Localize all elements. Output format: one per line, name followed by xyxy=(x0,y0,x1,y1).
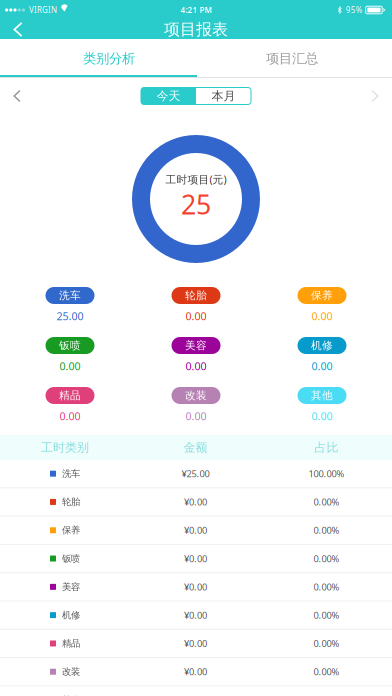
staticText: 0.00 xyxy=(185,409,206,423)
staticText: 精品 xyxy=(59,389,81,402)
staticText: 本月 xyxy=(211,89,235,103)
staticText: 工时类别 xyxy=(41,440,89,455)
staticText: ¥0.00 xyxy=(184,581,207,593)
staticText: 轮胎 xyxy=(62,496,80,508)
staticText: 其他 xyxy=(62,694,80,696)
button[interactable]: Next period xyxy=(358,85,392,107)
button[interactable]: Back xyxy=(0,20,36,39)
staticText: ¥25.00 xyxy=(181,467,209,480)
staticText: 0.00 xyxy=(185,359,206,373)
staticText: 改装 xyxy=(185,389,207,402)
staticText: 100.00% xyxy=(308,467,344,480)
staticText: 95% xyxy=(346,5,363,15)
button[interactable]: Previous period xyxy=(0,85,34,107)
staticText: 金额 xyxy=(183,440,207,455)
staticText: ¥0.00 xyxy=(184,666,207,678)
staticText: 4:21 PM xyxy=(180,5,211,15)
staticText: 工时项目(元) xyxy=(165,172,226,186)
staticText: 美容 xyxy=(62,581,80,593)
staticText: 0.00 xyxy=(185,309,206,323)
button[interactable]: 机修 xyxy=(259,337,385,387)
staticText: 25 xyxy=(181,186,211,222)
button[interactable]: 类别分析 xyxy=(22,39,196,78)
staticText: 0.00 xyxy=(311,359,332,373)
staticText: 0.00% xyxy=(313,637,339,650)
staticText: 0.00% xyxy=(313,524,339,536)
staticText: ¥0.00 xyxy=(184,609,207,621)
staticText: ¥0.00 xyxy=(184,552,207,565)
staticText: 洗车 xyxy=(62,468,80,479)
staticText: 今天 xyxy=(156,89,180,103)
staticText: 25.00 xyxy=(56,309,83,323)
button[interactable]: 精品 xyxy=(7,387,133,437)
button[interactable]: 今天 xyxy=(141,87,196,104)
staticText: ¥0.00 xyxy=(184,637,207,650)
staticText: 改装 xyxy=(62,666,80,677)
staticText: 0.00 xyxy=(59,409,80,423)
staticText: 精品 xyxy=(62,638,80,649)
staticText: 0.00% xyxy=(313,581,339,593)
staticText: ¥0.00 xyxy=(184,496,207,508)
staticText: VIRGIN xyxy=(29,5,57,15)
staticText: ¥0.00 xyxy=(184,524,207,536)
button[interactable]: 轮胎 xyxy=(133,287,259,337)
staticText: 项目汇总 xyxy=(266,50,318,67)
button[interactable]: 保养 xyxy=(259,287,385,337)
button[interactable]: 洗车 xyxy=(7,287,133,337)
staticText: 0.00% xyxy=(313,496,339,508)
staticText: 钣喷 xyxy=(62,553,80,564)
staticText: 钣喷 xyxy=(59,339,81,352)
staticText: 0.00 xyxy=(311,309,332,323)
staticText: 保养 xyxy=(62,524,80,536)
staticText: 0.00% xyxy=(313,609,339,621)
staticText: 0.00% xyxy=(313,666,339,678)
staticText: 项目报表 xyxy=(164,20,228,39)
staticText: 占比 xyxy=(314,440,338,455)
staticText: 类别分析 xyxy=(83,50,135,67)
button[interactable]: 项目汇总 xyxy=(196,39,388,78)
button[interactable]: 钣喷 xyxy=(7,337,133,387)
staticText: 0.00 xyxy=(59,359,80,373)
button[interactable]: 本月 xyxy=(196,87,251,104)
staticText: 美容 xyxy=(185,339,207,352)
staticText: 0.00 xyxy=(311,409,332,423)
button[interactable]: 其他 xyxy=(259,387,385,437)
staticText: 洗车 xyxy=(59,289,81,302)
staticText: 其他 xyxy=(311,389,333,402)
button[interactable]: 改装 xyxy=(133,387,259,437)
staticText: 机修 xyxy=(62,609,80,621)
staticText: 轮胎 xyxy=(185,289,207,302)
button[interactable]: 美容 xyxy=(133,337,259,387)
staticText: 0.00% xyxy=(313,552,339,565)
staticText: 机修 xyxy=(311,339,333,352)
staticText: 保养 xyxy=(311,289,333,302)
